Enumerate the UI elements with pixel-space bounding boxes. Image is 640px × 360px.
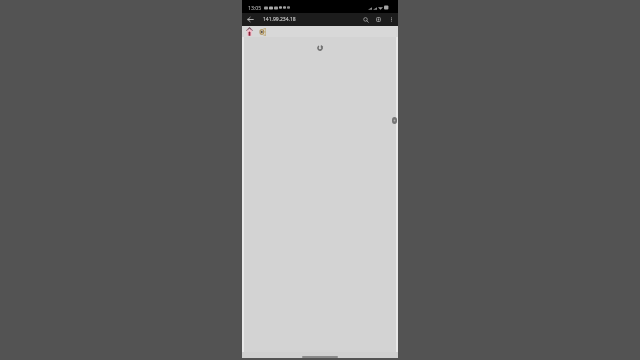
button[interactable]: More options — [385, 13, 398, 26]
staticText: 141.99.234.18 — [263, 16, 359, 23]
button[interactable]: Back — [242, 13, 258, 26]
button[interactable]: Search — [359, 13, 372, 26]
button[interactable]: Home — [244, 26, 255, 37]
button[interactable]: Home — [302, 356, 338, 358]
button[interactable]: Resize handle — [392, 117, 397, 124]
button[interactable]: Bookmark — [257, 26, 268, 37]
staticText: 13:05 — [248, 4, 262, 11]
button[interactable]: Tabs — [372, 13, 385, 26]
